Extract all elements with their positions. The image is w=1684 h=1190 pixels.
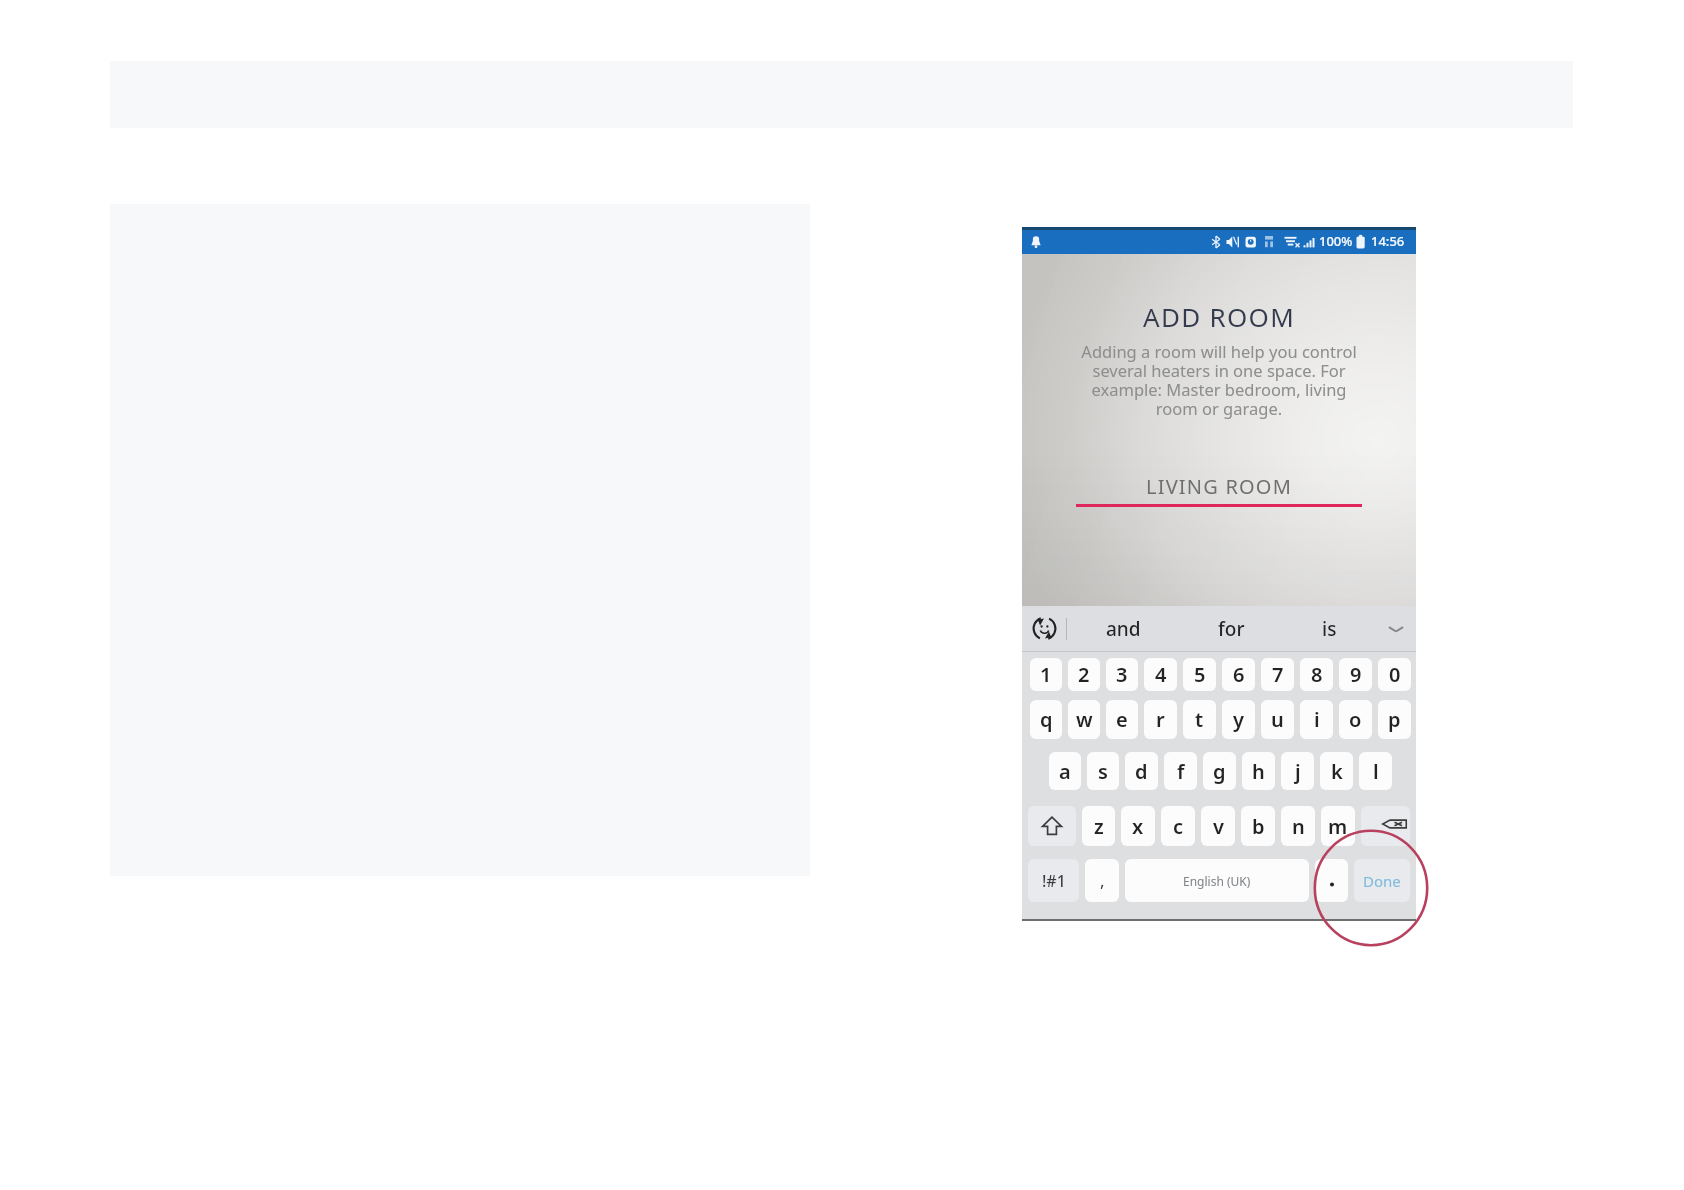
button[interactable]: a — [1049, 752, 1081, 790]
button[interactable]: 9 — [1339, 658, 1372, 691]
staticText: p — [1388, 706, 1401, 733]
staticText: s — [1098, 758, 1108, 785]
button[interactable]: !#1 — [1028, 859, 1079, 902]
staticText: Done — [1363, 871, 1401, 891]
staticText: n — [1292, 813, 1305, 840]
button[interactable]: Done — [1354, 859, 1410, 902]
staticText: o — [1349, 706, 1362, 733]
staticText: !#1 — [1042, 870, 1066, 892]
button[interactable]: Backspace — [1361, 806, 1410, 846]
staticText: h — [1252, 758, 1265, 785]
staticText: l — [1373, 758, 1379, 785]
button[interactable]: is — [1308, 610, 1351, 648]
staticText: English (UK) — [1183, 873, 1251, 889]
button[interactable]: 5 — [1183, 658, 1216, 691]
other: Done key highlight — [1313, 829, 1429, 947]
button[interactable]: , — [1085, 859, 1119, 902]
button[interactable]: f — [1164, 752, 1197, 790]
button[interactable]: o — [1339, 700, 1372, 739]
button[interactable]: k — [1320, 752, 1353, 790]
button[interactable]: w — [1068, 700, 1100, 739]
button[interactable]: 0 — [1378, 658, 1411, 691]
button[interactable]: 3 — [1106, 658, 1138, 691]
button[interactable]: m — [1321, 806, 1355, 846]
staticText: e — [1116, 706, 1128, 733]
staticText: g — [1213, 758, 1226, 785]
staticText: r — [1156, 706, 1165, 733]
staticText: 100% — [1319, 232, 1353, 250]
button[interactable]: y — [1222, 700, 1255, 739]
button[interactable]: 8 — [1300, 658, 1333, 691]
button[interactable]: LIVING ROOM — [1076, 473, 1362, 507]
staticText: w — [1076, 706, 1093, 733]
staticText: u — [1271, 706, 1284, 733]
staticText: b — [1252, 813, 1265, 840]
staticText: for — [1218, 616, 1245, 642]
button[interactable]: e — [1106, 700, 1138, 739]
button[interactable]: 6 — [1222, 658, 1255, 691]
button[interactable]: English (UK) — [1125, 859, 1309, 902]
staticText: x — [1132, 813, 1144, 840]
button[interactable]: 7 — [1261, 658, 1294, 691]
button[interactable]: h — [1242, 752, 1275, 790]
staticText: z — [1094, 813, 1104, 840]
button[interactable]: c — [1161, 806, 1195, 846]
button[interactable]: 1 — [1030, 658, 1062, 691]
button[interactable]: p — [1378, 700, 1411, 739]
button[interactable]: l — [1359, 752, 1392, 790]
button[interactable]: i — [1300, 700, 1333, 739]
button[interactable]: n — [1281, 806, 1315, 846]
staticText: a — [1059, 758, 1071, 785]
staticText: 3 — [1116, 661, 1128, 688]
staticText: i — [1314, 706, 1320, 733]
button[interactable]: 2 — [1068, 658, 1100, 691]
staticText: 5 — [1194, 661, 1206, 688]
button[interactable]: v — [1201, 806, 1235, 846]
staticText: f — [1177, 758, 1185, 785]
button[interactable]: 4 — [1144, 658, 1177, 691]
button[interactable]: x — [1121, 806, 1155, 846]
button[interactable]: Shift — [1028, 806, 1076, 846]
staticText: and — [1106, 616, 1141, 642]
staticText: t — [1195, 706, 1204, 733]
staticText: 1 — [1040, 661, 1052, 688]
staticText: LIVING ROOM — [1146, 473, 1293, 500]
staticText: v — [1213, 813, 1224, 840]
staticText: ADD ROOM — [1143, 299, 1296, 334]
button[interactable]: Emoji — [1022, 606, 1066, 651]
staticText: q — [1040, 706, 1053, 733]
button[interactable]: r — [1144, 700, 1177, 739]
staticText: 8 — [1311, 661, 1323, 688]
button[interactable]: and — [1092, 610, 1155, 648]
button[interactable]: q — [1030, 700, 1062, 739]
button[interactable]: u — [1261, 700, 1294, 739]
button[interactable]: b — [1241, 806, 1275, 846]
button[interactable]: d — [1125, 752, 1158, 790]
button[interactable]: Full stop — [1315, 859, 1348, 902]
button[interactable]: More suggestions — [1376, 606, 1416, 651]
staticText: 4 — [1155, 661, 1167, 688]
staticText: m — [1328, 813, 1348, 840]
staticText: c — [1173, 813, 1184, 840]
staticText: Adding a room will help you control seve… — [1069, 340, 1369, 420]
button[interactable]: j — [1281, 752, 1314, 790]
staticText: 6 — [1233, 661, 1245, 688]
button[interactable]: s — [1087, 752, 1119, 790]
button[interactable]: g — [1203, 752, 1236, 790]
button[interactable]: t — [1183, 700, 1216, 739]
staticText: 0 — [1389, 661, 1401, 688]
staticText: j — [1295, 758, 1301, 785]
staticText: 7 — [1272, 661, 1284, 688]
staticText: 2 — [1078, 661, 1090, 688]
button[interactable]: z — [1082, 806, 1115, 846]
staticText: y — [1233, 706, 1244, 733]
staticText: 9 — [1350, 661, 1362, 688]
button[interactable]: for — [1204, 610, 1259, 648]
staticText: , — [1100, 869, 1105, 892]
staticText: 14:56 — [1371, 232, 1405, 250]
staticText: d — [1135, 758, 1148, 785]
staticText: k — [1331, 758, 1343, 785]
staticText: is — [1322, 616, 1337, 642]
